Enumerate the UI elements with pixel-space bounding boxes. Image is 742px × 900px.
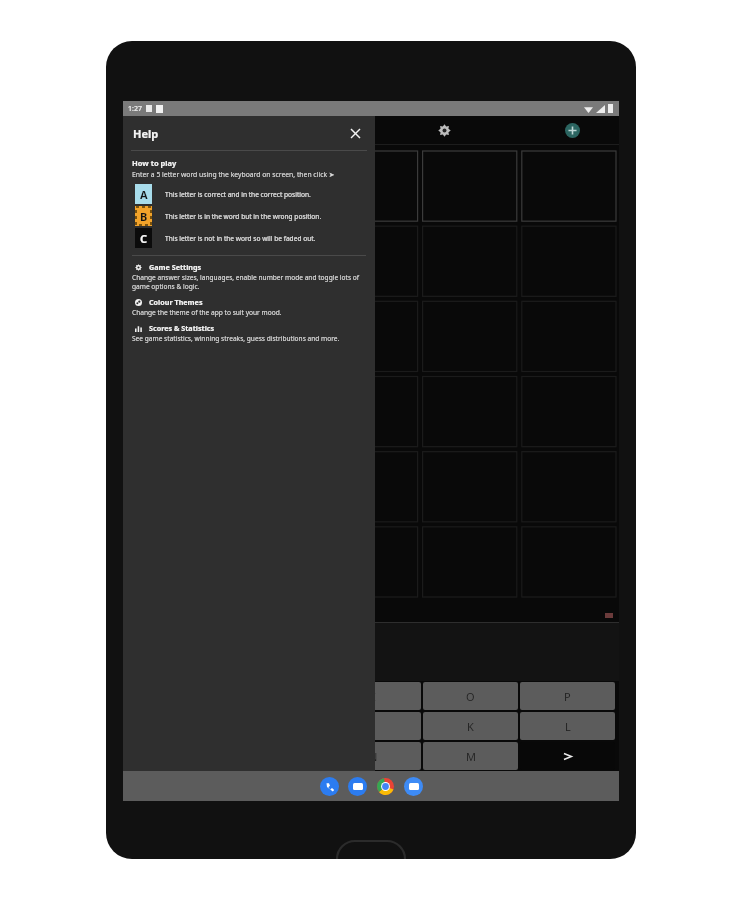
staticText: How to play [132, 158, 177, 168]
button[interactable]: Enter [520, 742, 615, 770]
staticText: This letter is correct and in the correc… [165, 190, 311, 199]
button[interactable]: K [423, 712, 518, 740]
staticText: Change answer sizes, languages, enable n… [132, 273, 366, 291]
button[interactable]: Phone [320, 777, 339, 796]
button[interactable]: O [423, 682, 518, 710]
button[interactable]: New game [559, 117, 585, 143]
button[interactable]: M [423, 742, 518, 770]
button[interactable]: J [326, 712, 421, 740]
staticText: P [564, 689, 571, 704]
staticText: Scores & Statistics [149, 323, 215, 333]
staticText: J [372, 719, 376, 734]
staticText: Enter a 5 letter word using the keyboard… [132, 170, 335, 179]
staticText: Colour Themes [149, 297, 203, 307]
staticText: 1:27 [128, 104, 142, 114]
staticText: This letter is not in the word so will b… [165, 234, 316, 243]
staticText: Game Settings [149, 262, 202, 272]
staticText: Help [133, 126, 159, 141]
button[interactable]: Chrome [376, 777, 395, 796]
button[interactable]: Colour Themes [132, 297, 366, 317]
staticText: I [372, 689, 376, 704]
button[interactable]: P [520, 682, 615, 710]
button[interactable]: N [326, 742, 421, 770]
staticText: L [565, 719, 571, 734]
staticText: This letter is in the word but in the wr… [165, 212, 322, 221]
staticText: Change the theme of the app to suit your… [132, 308, 366, 317]
staticText: M [466, 749, 476, 764]
staticText: A [140, 187, 148, 202]
button[interactable]: Settings [431, 117, 457, 143]
staticText: K [467, 719, 474, 734]
staticText: C [140, 231, 148, 246]
button[interactable]: I [326, 682, 421, 710]
staticText: O [466, 689, 475, 704]
button[interactable]: Close [345, 123, 365, 143]
button[interactable]: Game Settings [132, 262, 366, 291]
button[interactable]: Scores & Statistics [132, 323, 366, 343]
staticText: B [140, 209, 148, 224]
button[interactable]: Camera [404, 777, 423, 796]
staticText: N [369, 749, 378, 764]
button[interactable]: L [520, 712, 615, 740]
button[interactable]: Messages [348, 777, 367, 796]
staticText: See game statistics, winning streaks, gu… [132, 334, 366, 343]
